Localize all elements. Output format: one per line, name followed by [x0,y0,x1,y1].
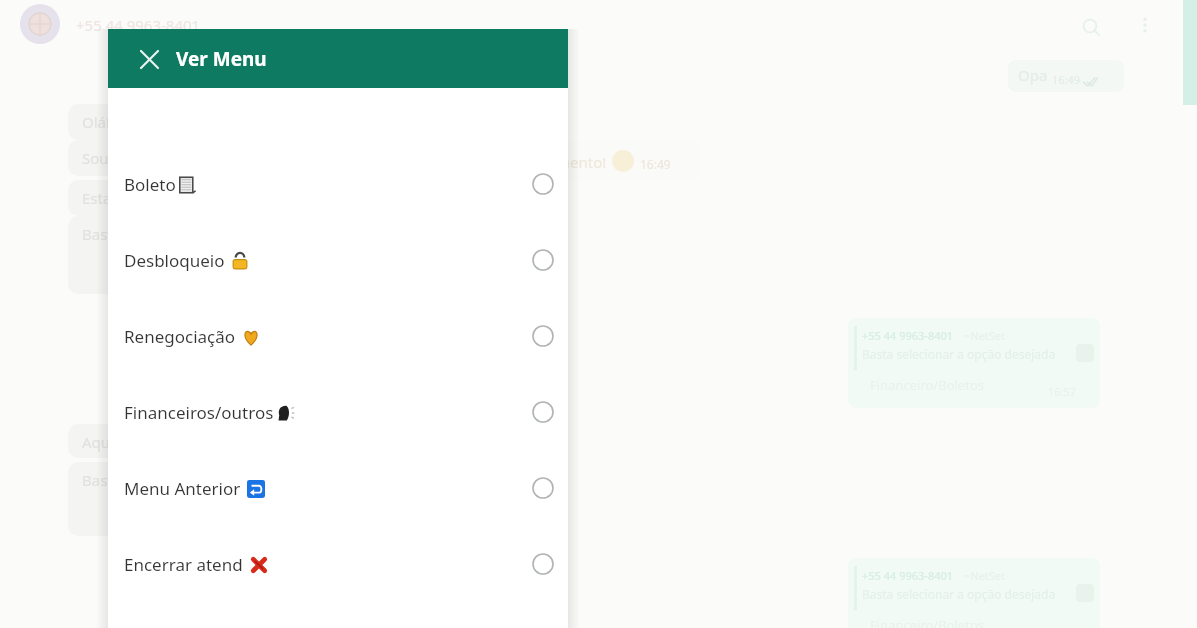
staticText: Estar [82,188,118,208]
staticText: Basta [82,470,122,490]
staticText: +55 44 9963-8401 [76,15,201,35]
staticText: +55 44 9963-8401 [862,328,954,343]
staticText: Financeiro/Boletos [870,376,984,394]
staticText: Ver Menu [176,46,267,72]
staticText: ~NetSet [964,568,1006,583]
staticText: Boleto [124,173,176,196]
staticText: Olá! [82,112,111,132]
staticText: Encerrar atend [124,553,248,576]
staticText: Renegociação [124,325,240,348]
staticText: Sou [82,148,109,168]
staticText: mento! [556,152,607,172]
staticText: Desbloqueio [124,249,229,272]
staticText: Aqui [82,432,114,452]
staticText: 16:49 [1052,72,1081,87]
button[interactable]: Renegociação [108,298,568,374]
button[interactable]: Search [1072,8,1108,44]
button[interactable]: Financeiros/outros [108,374,568,450]
staticText: +55 44 9963-8401 [862,568,954,583]
staticText: Financeiro/Boletos [870,616,984,628]
staticText: 16:57 [1048,384,1077,399]
button[interactable]: Close [134,44,164,74]
staticText: ~NetSet [964,328,1006,343]
staticText: Basta selecionar a opção desejada [862,586,1056,602]
button[interactable]: Menu Anterior [108,450,568,526]
button[interactable]: Encerrar atend [108,526,568,602]
staticText: Basta [82,224,122,244]
staticText: 16:49 [640,156,671,172]
staticText: Opa [1018,65,1048,85]
staticText: Financeiros/outros [124,401,274,424]
staticText: Basta selecionar a opção desejada [862,346,1056,362]
button[interactable]: Boleto [108,146,568,222]
staticText: Menu Anterior [124,477,245,500]
button[interactable]: Desbloqueio [108,222,568,298]
